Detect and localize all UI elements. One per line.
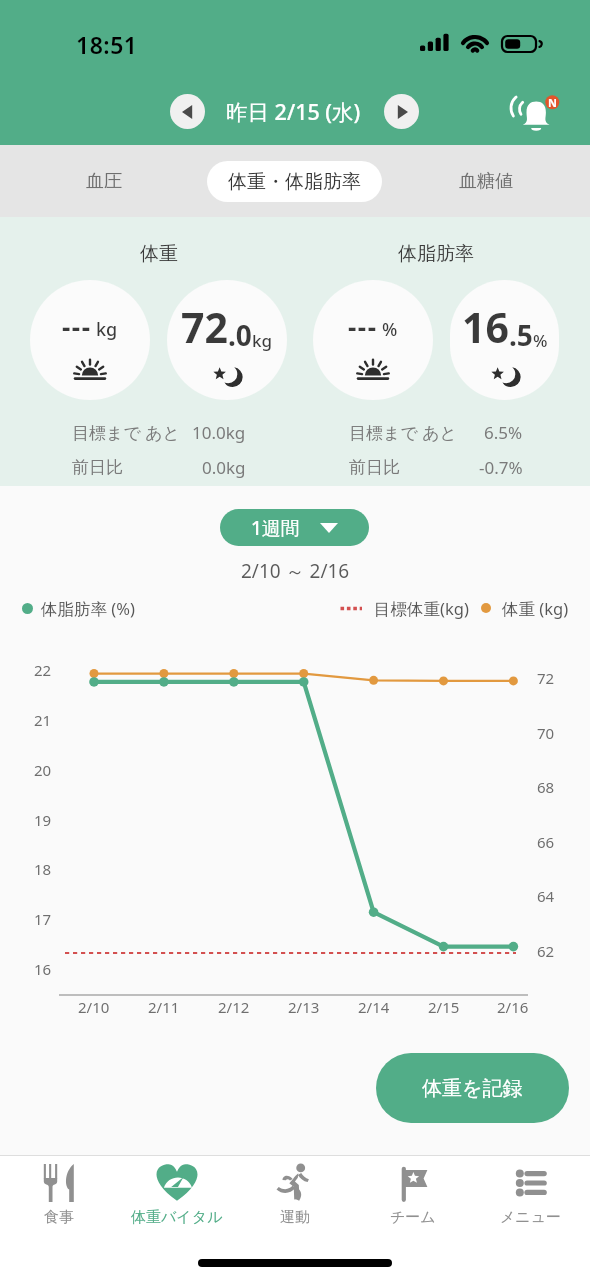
staticText: 目標まで あと: [349, 421, 458, 444]
staticText: 2/16: [497, 997, 529, 1017]
staticText: ---: [348, 309, 378, 344]
staticText: 血圧: [86, 170, 122, 193]
button[interactable]: 食事: [0, 1156, 118, 1234]
button[interactable]: 体重・体脂肪率: [207, 161, 382, 202]
staticText: 体重・体脂肪率: [228, 170, 361, 194]
button[interactable]: Previous day: [170, 94, 205, 129]
button[interactable]: 血圧: [0, 145, 207, 217]
staticText: 昨日 2/15 (水): [226, 97, 361, 126]
staticText: 22: [34, 660, 52, 680]
button[interactable]: 血糖値: [382, 145, 590, 217]
staticText: 0.0kg: [202, 456, 246, 479]
staticText: 18:51: [76, 29, 138, 60]
staticText: 運動: [280, 1208, 310, 1227]
button[interactable]: メニュー: [472, 1156, 590, 1234]
staticText: 70: [537, 723, 555, 743]
staticText: メニュー: [500, 1208, 562, 1227]
button[interactable]: 72: [167, 280, 287, 400]
staticText: 10.0kg: [192, 421, 246, 444]
staticText: 血糖値: [459, 170, 513, 193]
staticText: 16: [34, 959, 52, 979]
staticText: 2/10 ～ 2/16: [241, 558, 350, 584]
staticText: 2/14: [358, 997, 390, 1017]
button[interactable]: ---: [30, 280, 150, 400]
staticText: チーム: [390, 1208, 436, 1227]
button[interactable]: 16: [450, 280, 559, 400]
staticText: 18: [34, 859, 52, 879]
staticText: .0: [228, 316, 252, 354]
button[interactable]: Notifications: [506, 92, 564, 136]
button[interactable]: 体重バイタル: [118, 1156, 236, 1234]
staticText: 体脂肪率 (%): [41, 597, 135, 620]
staticText: 2/12: [218, 997, 250, 1017]
staticText: 体脂肪率: [398, 242, 474, 266]
staticText: 目標まで あと: [72, 421, 181, 444]
staticText: %: [533, 329, 548, 352]
staticText: 19: [34, 810, 52, 830]
staticText: 21: [34, 710, 52, 730]
staticText: 体重: [140, 242, 178, 266]
staticText: 62: [537, 941, 555, 961]
staticText: kg: [252, 329, 273, 352]
staticText: 6.5%: [484, 421, 523, 444]
staticText: N: [548, 95, 557, 109]
staticText: 前日比: [349, 457, 400, 478]
staticText: .5: [509, 316, 533, 354]
staticText: 72: [181, 299, 228, 355]
staticText: 前日比: [72, 457, 123, 478]
staticText: %: [382, 317, 398, 342]
button[interactable]: Next day: [384, 94, 419, 129]
staticText: 2/11: [148, 997, 180, 1017]
staticText: 2/15: [428, 997, 460, 1017]
staticText: 64: [537, 886, 555, 906]
staticText: 16: [462, 299, 509, 355]
staticText: 2/13: [288, 997, 320, 1017]
staticText: 目標体重(kg): [374, 597, 469, 620]
button[interactable]: チーム: [354, 1156, 472, 1234]
staticText: 66: [537, 832, 555, 852]
staticText: kg: [96, 317, 118, 342]
button[interactable]: ---: [313, 280, 433, 400]
staticText: 1週間: [251, 515, 300, 541]
staticText: 17: [34, 909, 52, 929]
staticText: 2/10: [78, 997, 110, 1017]
staticText: 体重 (kg): [502, 597, 569, 620]
staticText: 体重バイタル: [131, 1208, 223, 1227]
staticText: 72: [537, 668, 555, 688]
button[interactable]: 体重を記録: [376, 1053, 569, 1123]
button[interactable]: 1週間: [220, 509, 369, 546]
staticText: 体重を記録: [422, 1076, 523, 1101]
staticText: 68: [537, 777, 555, 797]
staticText: 20: [34, 760, 52, 780]
staticText: -0.7%: [479, 456, 523, 479]
staticText: ---: [62, 309, 92, 344]
button[interactable]: 運動: [236, 1156, 354, 1234]
staticText: 食事: [44, 1208, 74, 1227]
